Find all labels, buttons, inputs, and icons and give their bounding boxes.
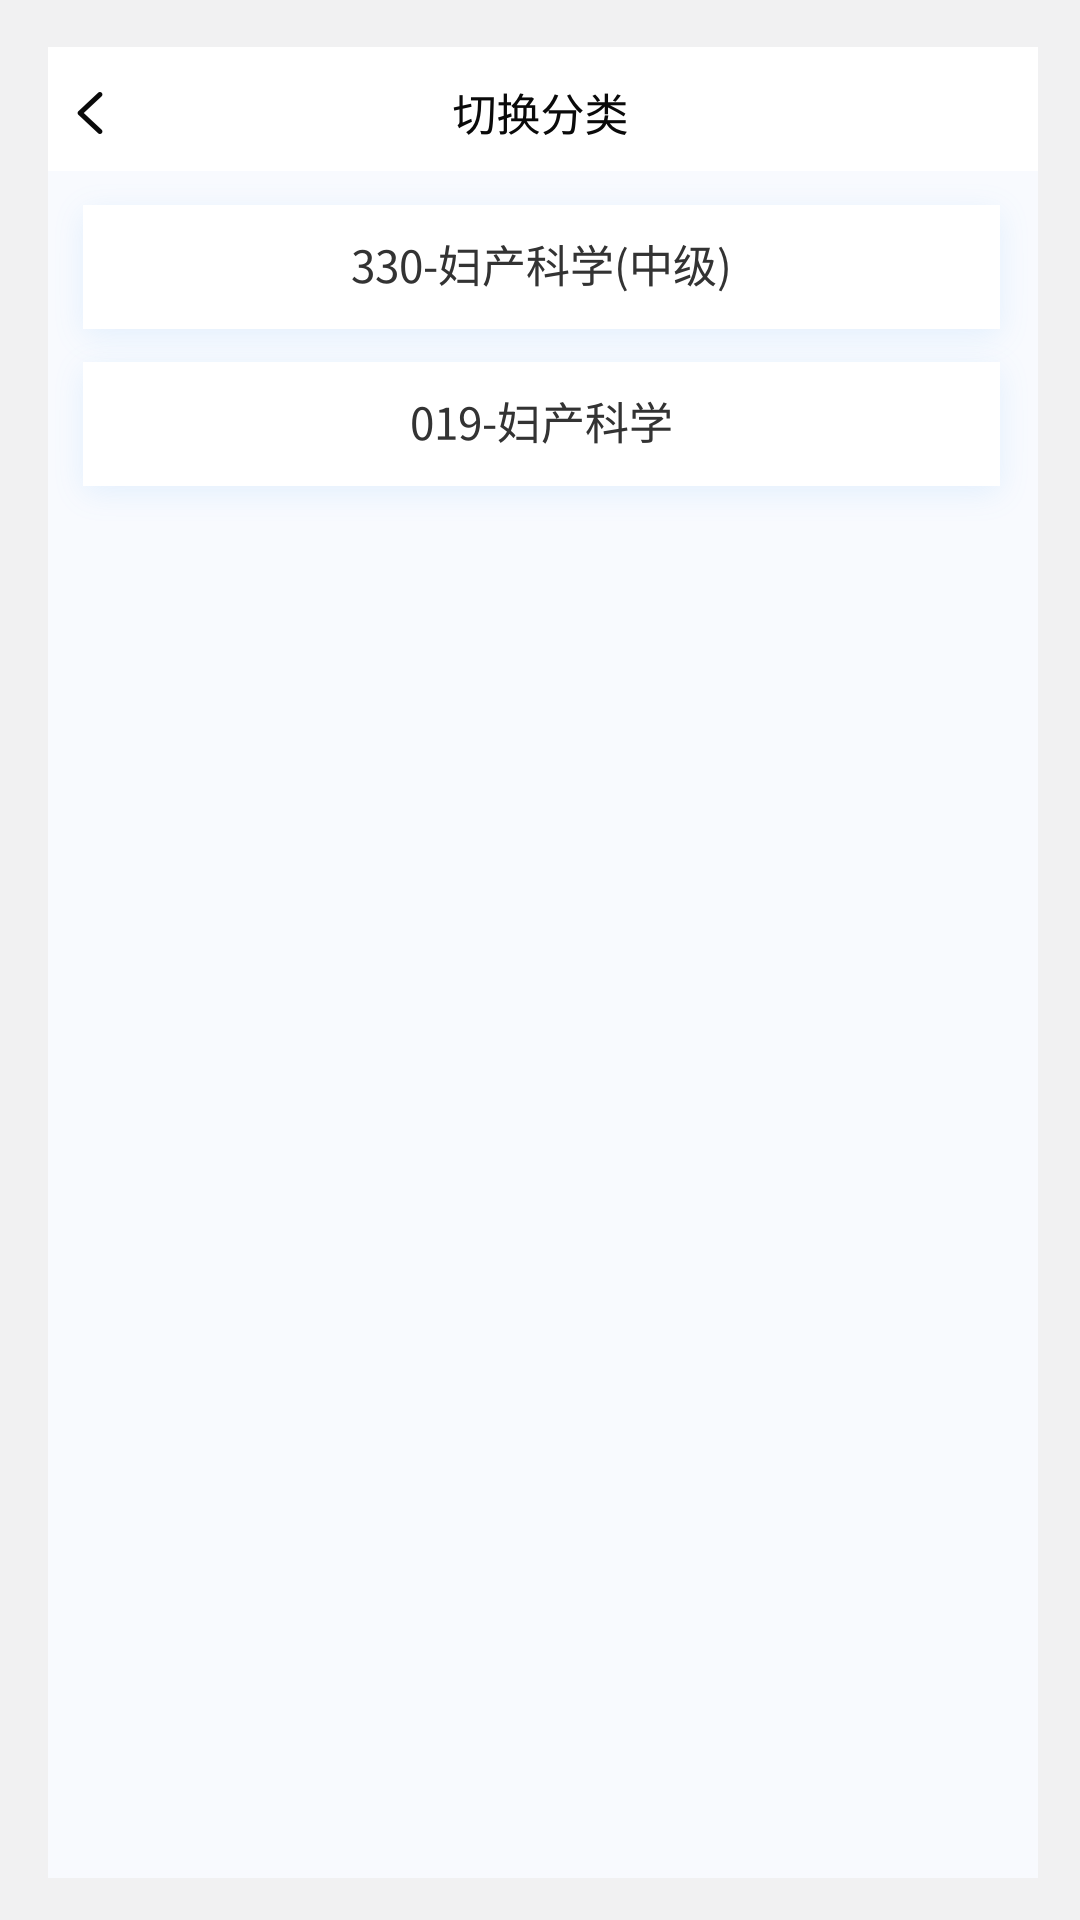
button[interactable]: Back bbox=[48, 57, 132, 161]
staticText: 330-妇产科学(中级) bbox=[351, 232, 732, 295]
button[interactable]: 330-妇产科学(中级) bbox=[83, 205, 1000, 329]
staticText: 019-妇产科学 bbox=[410, 389, 673, 452]
button[interactable]: 019-妇产科学 bbox=[83, 362, 1000, 486]
staticText: 切换分类 bbox=[452, 80, 628, 144]
